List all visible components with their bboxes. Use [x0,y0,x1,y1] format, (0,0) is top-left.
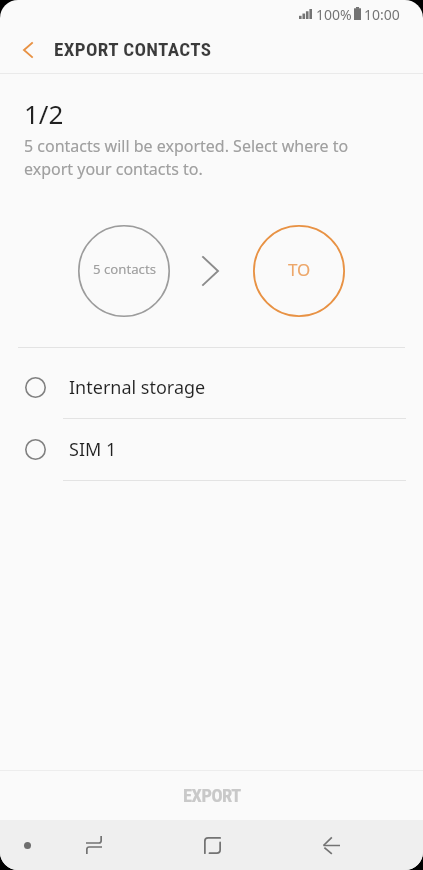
staticText: SIM 1 [69,437,117,462]
staticText: EXPORT CONTACTS [54,38,212,60]
staticText: Internal storage [69,375,206,400]
button[interactable]: EXPORT [0,771,423,820]
button[interactable]: Home [182,820,242,870]
staticText: 10:00 [364,5,400,24]
staticText: 1/2 [24,96,64,131]
staticText: TO [288,258,311,281]
button[interactable]: Navigate up [0,28,50,73]
staticText: 100% [316,5,352,24]
staticText: 5 contacts will be exported. Select wher… [24,135,349,180]
button[interactable]: Back [301,820,361,870]
staticText: 5 contacts [93,260,156,278]
button[interactable]: Internal storage [0,357,423,419]
button[interactable]: SIM 1 [0,419,423,481]
staticText: EXPORT [183,785,241,807]
button[interactable]: Recents [64,820,124,870]
